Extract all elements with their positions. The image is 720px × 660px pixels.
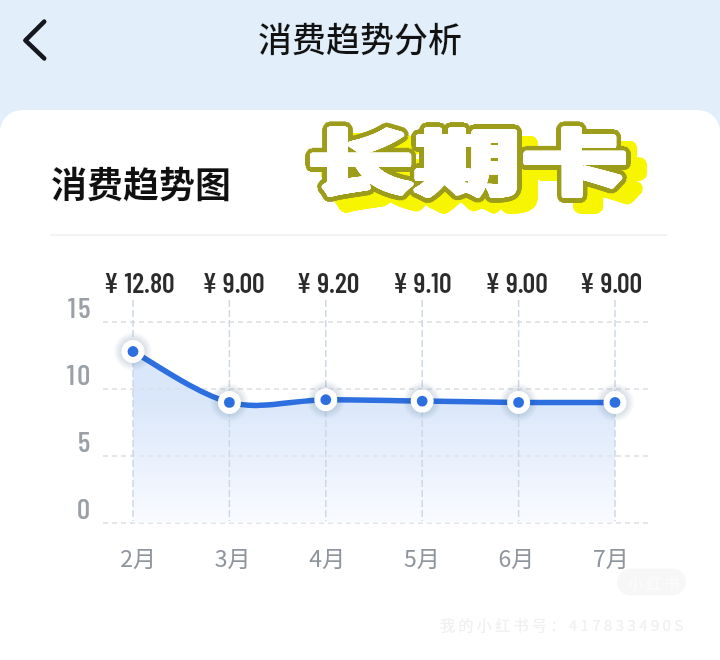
staticText: 消费趋势分析	[258, 13, 462, 62]
button[interactable]: Back	[0, 2, 72, 74]
staticText: 消费趋势图	[51, 156, 232, 208]
